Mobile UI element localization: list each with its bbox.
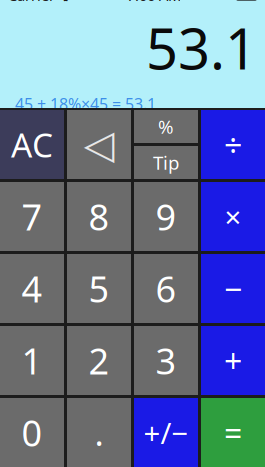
button[interactable]: . (67, 398, 131, 467)
staticText: 4 (21, 265, 42, 312)
button[interactable]: + (201, 326, 265, 395)
staticText: . (94, 409, 103, 455)
button[interactable]: 1 (0, 326, 64, 395)
staticText: 53.1 (146, 11, 257, 85)
staticText: 3 (155, 337, 176, 384)
button[interactable]: Backspace (67, 110, 131, 179)
staticText: × (224, 197, 241, 236)
staticText: + (224, 339, 242, 382)
button[interactable]: AC (0, 110, 64, 179)
staticText: − (224, 267, 242, 310)
button[interactable]: 5 (67, 254, 131, 323)
staticText: ᯤ (55, 0, 72, 5)
button[interactable]: 4 (0, 254, 64, 323)
staticText: 2 (88, 337, 109, 384)
button[interactable]: 7 (0, 182, 64, 251)
staticText: ◁ (83, 122, 114, 167)
button[interactable]: × (201, 182, 265, 251)
button[interactable]: +/− (134, 398, 198, 467)
staticText: 0 (21, 409, 42, 456)
button[interactable]: 6 (134, 254, 198, 323)
staticText: 9 (155, 193, 176, 240)
staticText: Carrier (8, 0, 55, 5)
button[interactable]: % (134, 110, 198, 143)
button[interactable]: 3 (134, 326, 198, 395)
staticText: = (224, 411, 242, 454)
button[interactable]: 0 (0, 398, 64, 467)
staticText: AC (11, 122, 53, 167)
staticText: 7 (21, 193, 42, 240)
staticText: 8 (88, 193, 109, 240)
staticText: ÷ (224, 123, 242, 166)
button[interactable]: Tip (134, 146, 198, 179)
button[interactable]: − (201, 254, 265, 323)
button[interactable]: 8 (67, 182, 131, 251)
staticText: 6 (155, 265, 176, 312)
button[interactable]: = (201, 398, 265, 467)
staticText: 7:06 AM (127, 0, 181, 5)
staticText: 45 + 18%×45 = 53.1 (15, 93, 156, 114)
staticText: +/− (143, 413, 188, 452)
button[interactable]: 2 (67, 326, 131, 395)
staticText: Tip (153, 150, 179, 175)
button[interactable]: ÷ (201, 110, 265, 179)
button[interactable]: 9 (134, 182, 198, 251)
staticText: % (158, 114, 174, 139)
staticText: 1 (21, 337, 42, 384)
staticText: 5 (88, 265, 109, 312)
